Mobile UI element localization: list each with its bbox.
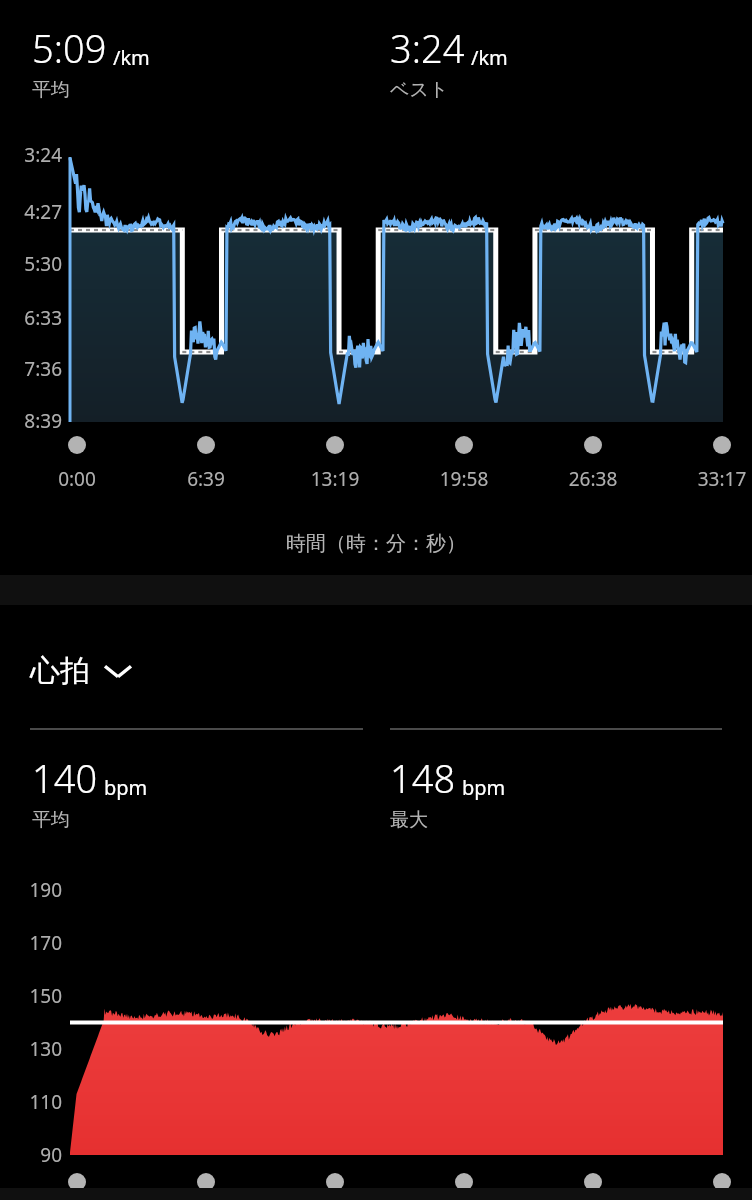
staticText: 7:36 [0,356,62,382]
staticText: 13:19 [290,466,380,492]
staticText: 170 [0,930,62,956]
staticText: 最大 [390,808,428,832]
button[interactable]: 3:24 [390,22,508,102]
staticText: 時間（時：分：秒） [286,531,466,556]
staticText: ベスト [390,78,449,102]
staticText: 150 [0,983,62,1009]
staticText: 19:58 [419,466,509,492]
staticText: 平均 [32,78,70,102]
button[interactable]: 140 [32,752,148,832]
staticText: 5:09 [32,22,107,74]
staticText: bpm [462,774,506,801]
staticText: /km [471,44,508,71]
staticText: 心拍 [30,652,90,690]
staticText: 148 [390,752,456,804]
staticText: 8:39 [0,408,62,434]
staticText: 0:00 [32,466,122,492]
staticText: 5:30 [0,251,62,277]
button[interactable]: 5:09 [32,22,150,102]
staticText: 4:27 [0,199,62,225]
staticText: bpm [104,774,148,801]
staticText: 26:38 [548,466,638,492]
staticText: 3:24 [0,142,62,168]
staticText: 190 [0,877,62,903]
staticText: 140 [32,752,98,804]
staticText: 6:39 [161,466,251,492]
staticText: 33:17 [677,466,752,492]
staticText: 6:33 [0,305,62,331]
staticText: 110 [0,1089,62,1115]
staticText: 90 [0,1142,62,1168]
staticText: /km [113,44,150,71]
button[interactable]: 心拍 [30,652,146,690]
staticText: 130 [0,1036,62,1062]
staticText: 平均 [32,808,70,832]
other: Expand heart rate section [90,652,146,690]
button[interactable]: 148 [390,752,506,832]
staticText: 3:24 [390,22,465,74]
